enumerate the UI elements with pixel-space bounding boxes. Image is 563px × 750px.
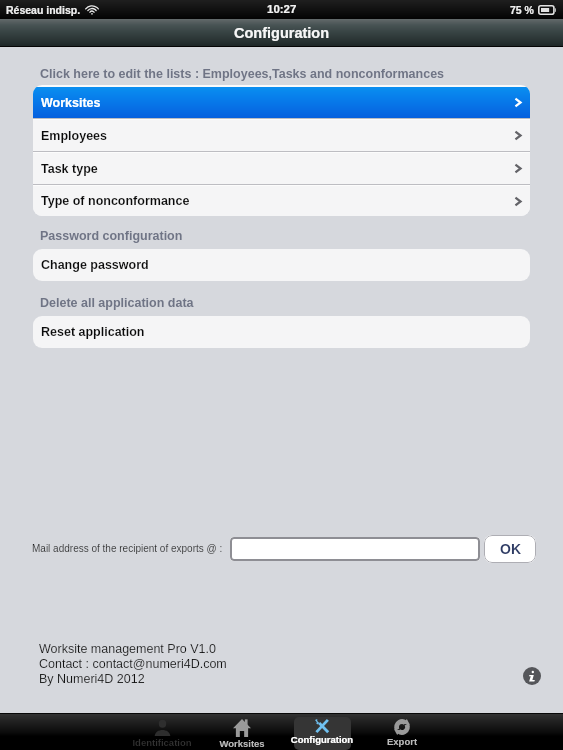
button[interactable]: Task type <box>33 153 530 184</box>
staticText: Contact : contact@numeri4D.com <box>39 657 227 671</box>
staticText: Réseau indisp. <box>6 4 81 16</box>
button[interactable]: Identification <box>122 714 202 750</box>
button[interactable]: OK <box>484 535 536 563</box>
button[interactable]: Reset application <box>33 316 530 348</box>
staticText: Identification <box>123 737 201 748</box>
staticText: Password configuration <box>40 229 183 243</box>
button[interactable]: Worksites <box>202 714 282 750</box>
button[interactable]: Mail address input <box>230 537 480 561</box>
button[interactable]: Export <box>362 714 442 750</box>
button[interactable]: Configuration <box>282 714 362 750</box>
staticText: Task type <box>41 162 98 176</box>
staticText: Type of nonconformance <box>41 194 190 208</box>
staticText: Export <box>363 736 441 747</box>
button[interactable]: Employees <box>33 120 530 151</box>
staticText: OK <box>500 541 521 557</box>
staticText: Delete all application data <box>40 296 194 310</box>
staticText: Worksite management Pro V1.0 <box>39 642 216 656</box>
staticText: Worksites <box>41 96 101 110</box>
staticText: Change password <box>41 258 149 272</box>
staticText: Configuration <box>234 25 330 41</box>
button[interactable]: Info <box>522 666 542 686</box>
button[interactable]: Change password <box>33 249 530 281</box>
staticText: Reset application <box>41 325 145 339</box>
staticText: Mail address of the recipient of exports… <box>32 543 223 554</box>
button[interactable]: Worksites <box>33 87 530 118</box>
staticText: Click here to edit the lists : Employees… <box>40 67 445 81</box>
button[interactable]: Type of nonconformance <box>33 186 530 216</box>
staticText: Worksites <box>203 738 281 749</box>
staticText: Employees <box>41 129 108 143</box>
staticText: By Numeri4D 2012 <box>39 672 145 686</box>
staticText: 75 % <box>510 4 534 16</box>
staticText: Configuration <box>283 734 361 745</box>
staticText: 10:27 <box>267 3 297 16</box>
